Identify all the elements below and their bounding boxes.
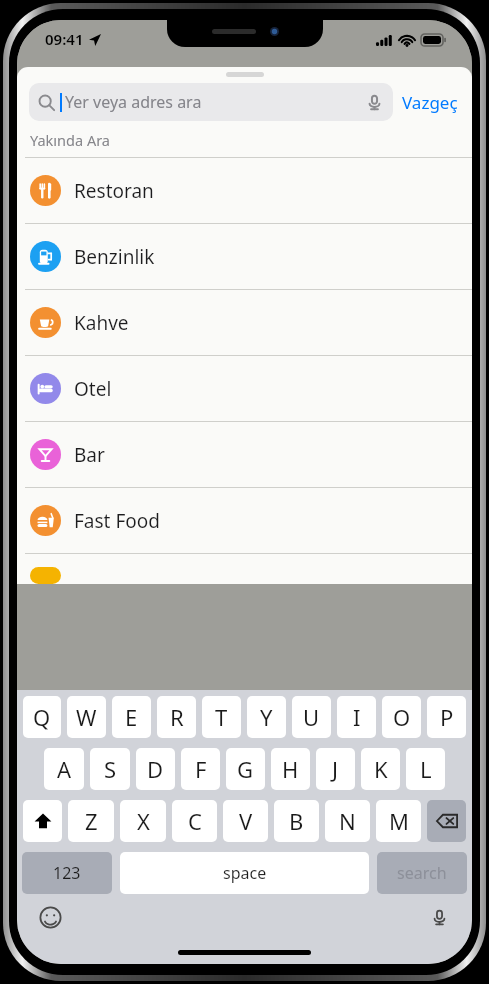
button[interactable]: B (274, 800, 319, 842)
button[interactable]: Restoran (17, 158, 472, 223)
staticText: V (239, 806, 253, 836)
button[interactable]: Fast Food (17, 488, 472, 553)
button[interactable]: search (377, 852, 467, 894)
staticText: X (137, 806, 150, 836)
staticText: Yer veya adres ara (65, 91, 202, 113)
staticText: M (389, 806, 409, 836)
staticText: W (76, 702, 97, 732)
button[interactable]: 123 (22, 852, 112, 894)
button[interactable]: Bar (17, 422, 472, 487)
staticText: H (282, 754, 299, 784)
staticText: Q (33, 702, 51, 732)
staticText: I (353, 702, 361, 732)
button[interactable]: Kahve (17, 290, 472, 355)
button[interactable] (17, 554, 472, 584)
button[interactable]: Q (23, 696, 61, 738)
button[interactable]: G (226, 748, 265, 790)
button[interactable]: Shift (23, 800, 62, 842)
staticText: T (215, 702, 228, 732)
button[interactable]: Emoji (35, 902, 65, 932)
staticText: Bar (74, 442, 105, 468)
button[interactable]: X (120, 800, 166, 842)
staticText: L (420, 754, 432, 784)
button[interactable]: K (361, 748, 400, 790)
staticText: A (57, 754, 72, 784)
staticText: D (147, 754, 164, 784)
staticText: Benzinlik (74, 244, 155, 270)
staticText: S (104, 754, 117, 784)
button[interactable]: Y (247, 696, 286, 738)
button[interactable]: N (325, 800, 370, 842)
staticText: C (188, 806, 202, 836)
staticText: K (374, 754, 388, 784)
button[interactable]: Z (68, 800, 114, 842)
button[interactable]: I (337, 696, 376, 738)
staticText: N (339, 806, 356, 836)
staticText: J (332, 754, 339, 784)
button[interactable]: Sil (427, 800, 466, 842)
button[interactable]: M (376, 800, 421, 842)
button[interactable]: D (136, 748, 175, 790)
staticText: F (195, 754, 207, 784)
staticText: Z (85, 806, 98, 836)
staticText: space (223, 862, 267, 884)
button[interactable]: Vazgeç (393, 87, 460, 118)
staticText: U (303, 702, 320, 732)
button[interactable]: F (181, 748, 220, 790)
button[interactable]: U (292, 696, 331, 738)
button[interactable]: J (316, 748, 355, 790)
staticText: E (125, 702, 138, 732)
staticText: P (440, 702, 454, 732)
button[interactable]: O (382, 696, 421, 738)
staticText: 123 (53, 862, 81, 884)
button[interactable]: V (223, 800, 268, 842)
staticText: search (397, 862, 447, 884)
button[interactable]: R (157, 696, 196, 738)
button[interactable]: E (112, 696, 151, 738)
button[interactable]: S (90, 748, 130, 790)
button[interactable]: T (202, 696, 241, 738)
button[interactable]: Dikte (424, 902, 454, 932)
staticText: Otel (74, 376, 112, 402)
button[interactable]: Yer veya adres ara (29, 83, 393, 121)
button[interactable]: W (67, 696, 106, 738)
staticText: G (237, 754, 254, 784)
staticText: 09:41 (45, 29, 84, 49)
button[interactable]: C (172, 800, 217, 842)
staticText: Y (260, 702, 273, 732)
button[interactable]: L (406, 748, 445, 790)
staticText: Restoran (74, 178, 154, 204)
button[interactable]: space (120, 852, 369, 894)
button[interactable]: Sesli arama (364, 92, 384, 112)
button[interactable]: Benzinlik (17, 224, 472, 289)
staticText: Fast Food (74, 508, 160, 534)
staticText: Vazgeç (402, 91, 458, 114)
staticText: B (289, 806, 304, 836)
staticText: O (393, 702, 411, 732)
staticText: Yakında Ara (30, 130, 110, 150)
button[interactable]: A (44, 748, 84, 790)
button[interactable]: P (427, 696, 466, 738)
staticText: R (170, 702, 184, 732)
button[interactable]: H (271, 748, 310, 790)
button[interactable]: Otel (17, 356, 472, 421)
staticText: Kahve (74, 310, 129, 336)
